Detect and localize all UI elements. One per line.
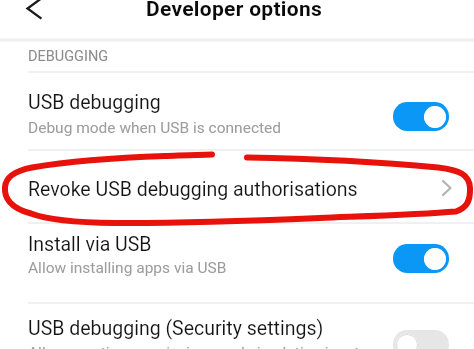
- staticText: Allow installing apps via USB: [28, 259, 227, 277]
- staticText: Install via USB: [28, 233, 152, 256]
- button[interactable]: [393, 244, 449, 273]
- button[interactable]: Install via USB: [0, 229, 474, 303]
- staticText: Allow granting permissions and simulatin…: [28, 344, 360, 349]
- button[interactable]: USB debugging: [0, 84, 474, 150]
- staticText: Developer options: [0, 0, 471, 22]
- button[interactable]: Revoke USB debugging authorisations: [0, 156, 474, 223]
- button[interactable]: [393, 102, 449, 131]
- staticText: Debug mode when USB is connected: [28, 119, 282, 137]
- staticText: USB debugging (Security settings): [28, 317, 324, 340]
- staticText: USB debugging: [28, 91, 161, 114]
- staticText: DEBUGGING: [28, 48, 109, 65]
- button[interactable]: USB debugging (Security settings): [0, 303, 474, 349]
- button[interactable]: [14, 0, 52, 26]
- staticText: Revoke USB debugging authorisations: [28, 178, 358, 201]
- button[interactable]: [393, 330, 449, 349]
